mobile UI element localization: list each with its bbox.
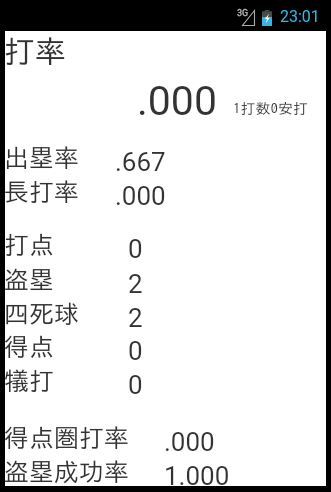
staticText: 1打数0安打 (233, 101, 308, 116)
button[interactable]: 犠打 (5, 364, 326, 398)
staticText: 長打率 (4, 179, 79, 204)
staticText: 0 (128, 370, 143, 400)
button[interactable]: 得点圏打率 (5, 421, 326, 455)
staticText: 四死球 (4, 301, 79, 326)
staticText: .000 (115, 181, 166, 211)
staticText: 3G (237, 8, 249, 19)
button[interactable]: 四死球 (5, 297, 326, 331)
staticText: 盗塁成功率 (4, 459, 129, 484)
staticText: 打率 (4, 36, 66, 67)
staticText: 0 (128, 234, 143, 264)
staticText: 23:01 (280, 7, 320, 26)
staticText: 犠打 (4, 368, 54, 393)
button[interactable]: 盗塁 (5, 263, 326, 297)
staticText: 打点 (4, 232, 54, 257)
staticText: 2 (128, 269, 143, 299)
staticText: .000 (164, 427, 215, 457)
other: Battery charging (262, 10, 272, 26)
staticText: 2 (128, 303, 143, 333)
button[interactable]: .000 (5, 71, 326, 126)
staticText: 1.000 (164, 461, 230, 491)
button[interactable]: 打点 (5, 228, 326, 262)
staticText: 出塁率 (4, 145, 79, 170)
staticText: .667 (115, 147, 166, 177)
staticText: 0 (128, 336, 143, 366)
button[interactable]: 盗塁成功率 (5, 455, 326, 489)
staticText: 得点圏打率 (4, 425, 129, 450)
other: Mobile signal strength, 3G (242, 10, 255, 26)
staticText: 得点 (4, 334, 54, 359)
button[interactable]: 長打率 (5, 175, 326, 209)
staticText: .000 (137, 77, 217, 125)
button[interactable]: 得点 (5, 330, 326, 364)
staticText: 盗塁 (4, 267, 54, 292)
button[interactable]: 出塁率 (5, 141, 326, 175)
